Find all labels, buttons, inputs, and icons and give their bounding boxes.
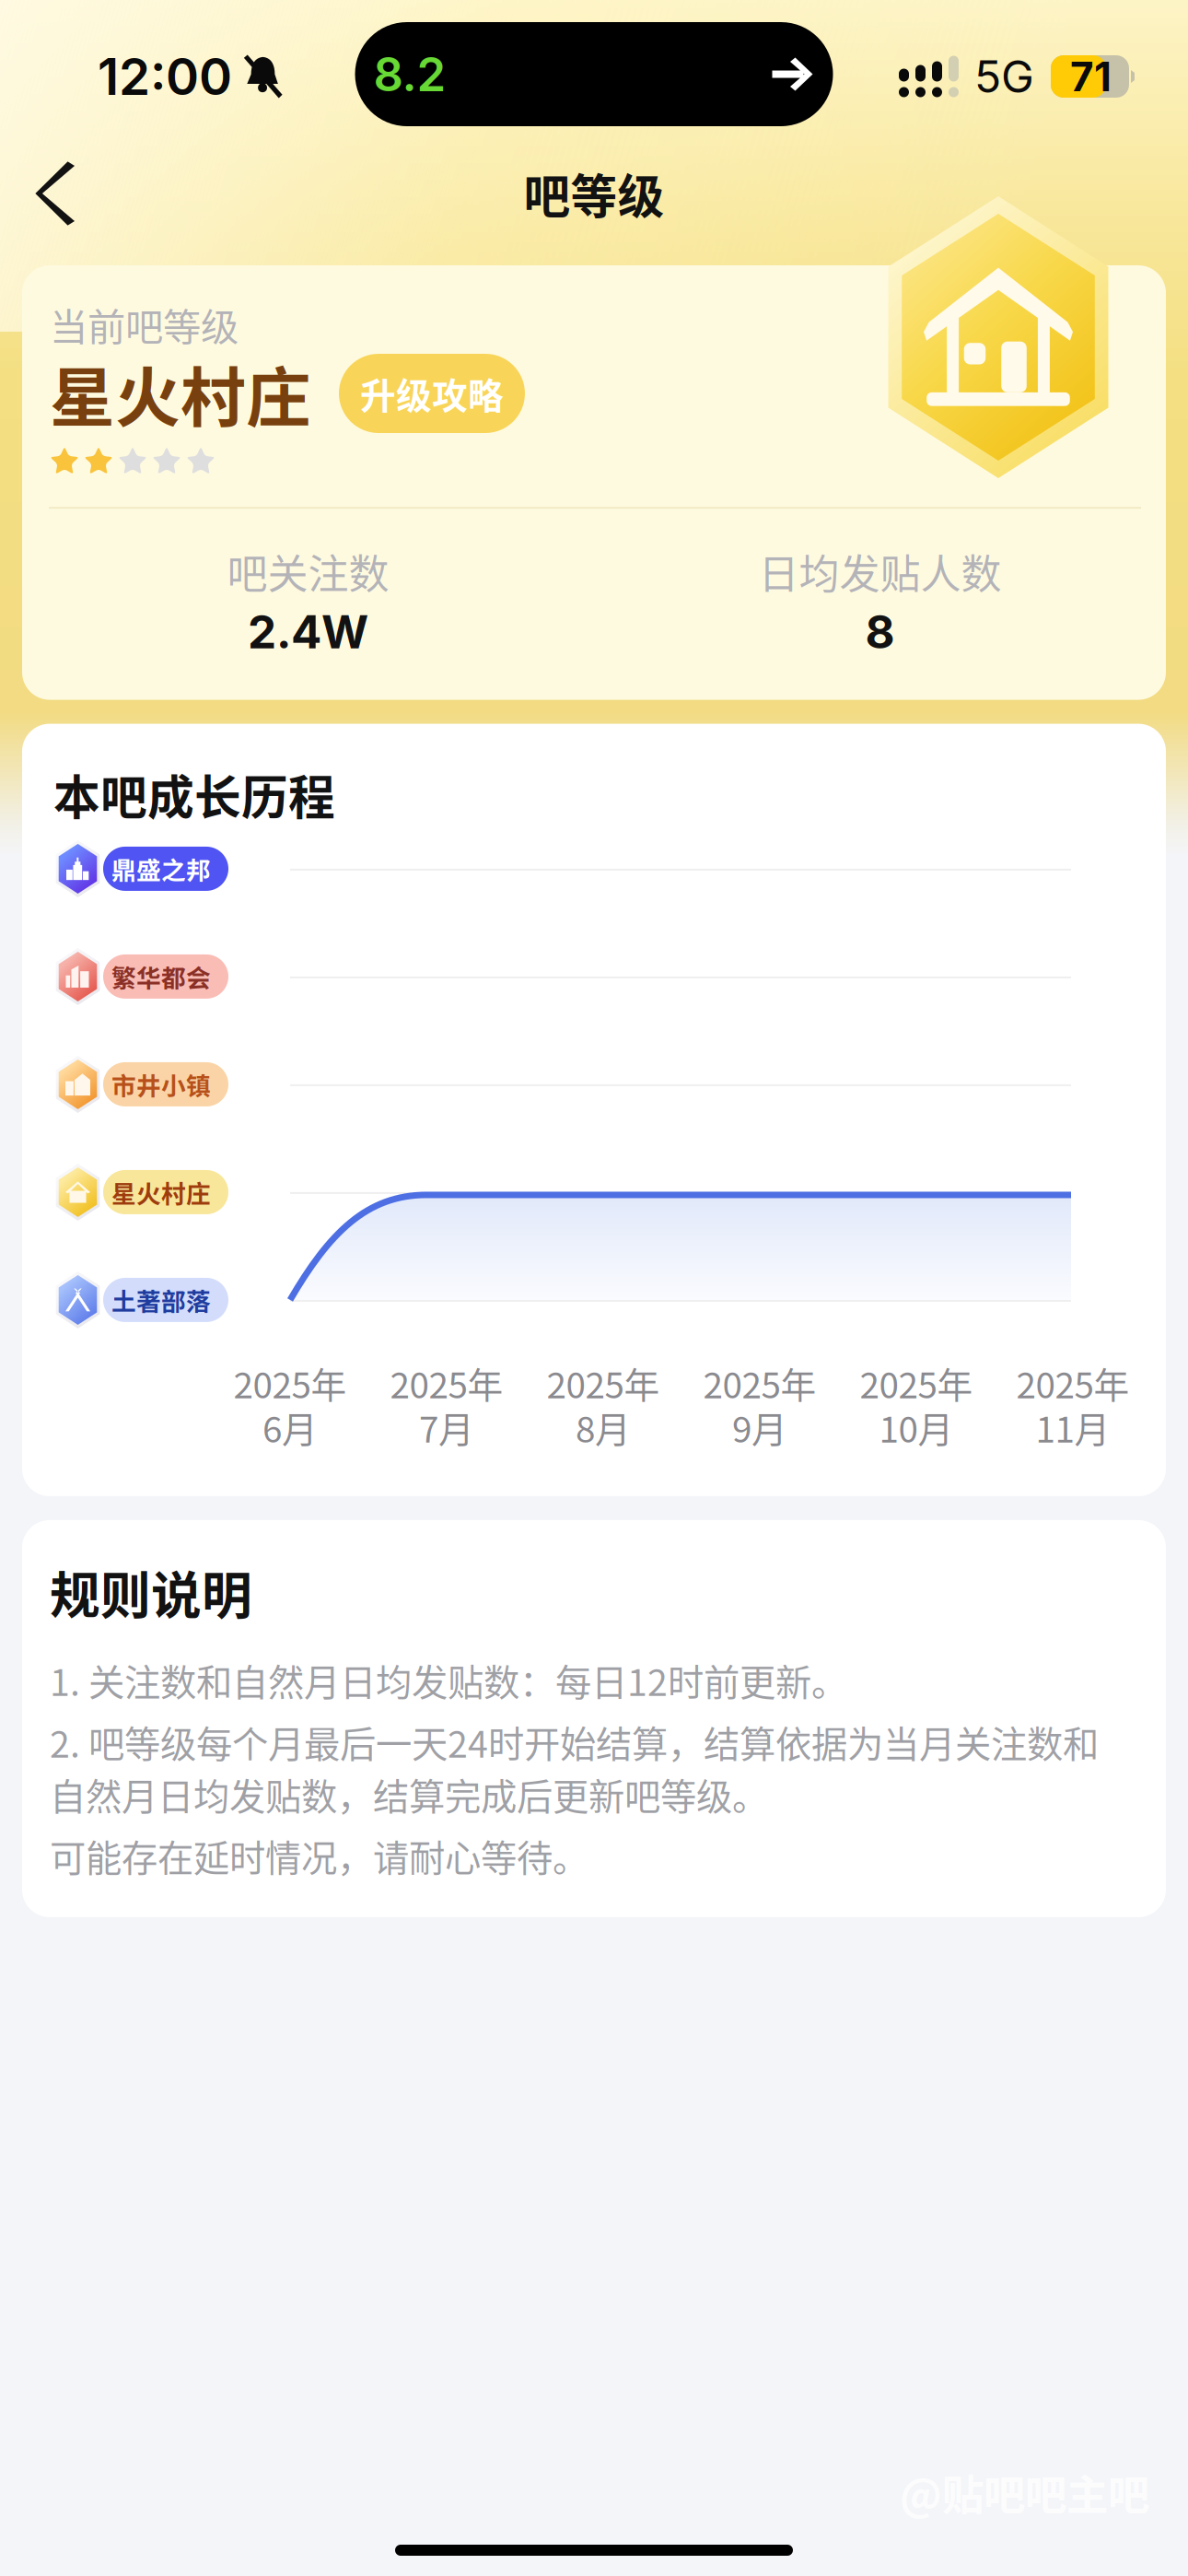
staticText: 7月 — [419, 1401, 474, 1453]
staticText: 10月 — [879, 1401, 954, 1453]
staticText: 当前吧等级 — [50, 297, 239, 352]
staticText: 可能存在延时情况，请耐心等待。 — [50, 1830, 588, 1882]
staticText: 2025年 — [390, 1357, 503, 1409]
staticText: 鼎盛之邦 — [111, 851, 211, 886]
staticText: 繁华都会 — [111, 959, 211, 994]
staticText: 9月 — [732, 1401, 787, 1453]
staticText: 市井小镇 — [111, 1067, 211, 1102]
staticText: 2025年 — [703, 1357, 816, 1409]
staticText: 12:00 — [98, 46, 232, 107]
staticText: 吧等级 — [524, 160, 664, 227]
staticText: 5G — [974, 50, 1034, 103]
staticText: 2025年 — [547, 1357, 660, 1409]
staticText: 2. 吧等级每个月最后一天24时开始结算，结算依据为当月关注数和自然月日均发贴数… — [50, 1716, 1099, 1821]
staticText: 11月 — [1036, 1401, 1110, 1453]
staticText: 1. 关注数和自然月日均发贴数：每日12时前更新。 — [50, 1654, 847, 1706]
staticText: 星火村庄 — [111, 1174, 211, 1210]
staticText: @贴吧吧主吧 — [900, 2462, 1149, 2523]
staticText: 吧关注数 — [227, 542, 389, 601]
staticText: 本吧成长历程 — [53, 761, 335, 828]
staticText: 8.2 — [373, 46, 446, 102]
staticText: 8月 — [576, 1401, 631, 1453]
staticText: 升级攻略 — [360, 368, 504, 419]
staticText: 2.4W — [248, 604, 368, 659]
button[interactable]: 返回 — [15, 149, 103, 238]
staticText: 2025年 — [860, 1357, 973, 1409]
staticText: 71 — [1070, 52, 1112, 101]
staticText: 8 — [865, 604, 895, 659]
staticText: 日均发贴人数 — [758, 542, 1002, 601]
staticText: 土著部落 — [111, 1282, 211, 1318]
staticText: 6月 — [262, 1401, 318, 1453]
staticText: 星火村庄 — [50, 346, 311, 441]
button[interactable]: 升级攻略 — [339, 354, 525, 433]
staticText: 2025年 — [1016, 1357, 1130, 1409]
staticText: 2025年 — [233, 1357, 347, 1409]
staticText: 规则说明 — [50, 1555, 252, 1628]
